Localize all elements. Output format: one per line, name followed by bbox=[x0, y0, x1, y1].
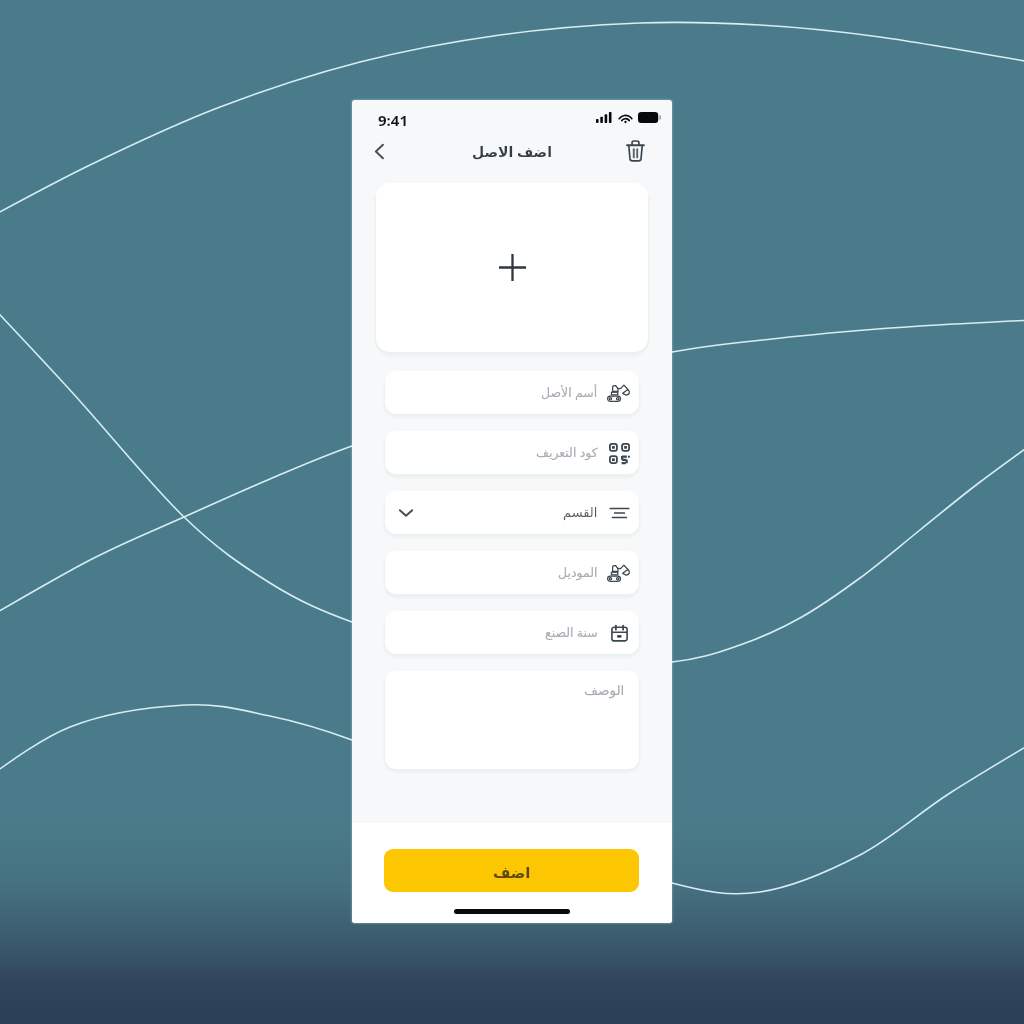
button[interactable]: سنة الصنع bbox=[385, 611, 639, 654]
button[interactable]: اضف bbox=[384, 849, 639, 892]
button[interactable]: Back bbox=[364, 136, 394, 166]
button[interactable]: Delete bbox=[620, 136, 650, 166]
staticText: سنة الصنع bbox=[545, 624, 598, 641]
button[interactable]: أسم الأصل bbox=[385, 371, 639, 414]
staticText: الموديل bbox=[558, 565, 598, 580]
staticText: اضف الاصل bbox=[472, 142, 552, 161]
button[interactable]: الموديل bbox=[385, 551, 639, 594]
button[interactable]: الوصف bbox=[385, 671, 639, 769]
staticText: اضف bbox=[493, 864, 531, 881]
button[interactable]: Add photo bbox=[376, 183, 648, 352]
button[interactable]: القسم bbox=[385, 491, 639, 534]
button[interactable]: كود التعريف bbox=[385, 431, 639, 474]
staticText: أسم الأصل bbox=[541, 384, 598, 401]
staticText: 9:41 bbox=[378, 110, 408, 130]
staticText: القسم bbox=[563, 505, 598, 520]
staticText: كود التعريف bbox=[536, 444, 598, 461]
staticText: الوصف bbox=[584, 682, 625, 698]
